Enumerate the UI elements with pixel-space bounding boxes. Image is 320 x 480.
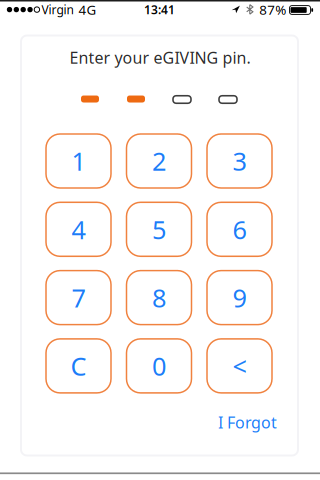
staticText: Enter your eGIVING pin. (69, 47, 250, 68)
button[interactable]: 1 (46, 134, 111, 188)
button[interactable]: Delete (207, 339, 272, 393)
staticText: Virgin (41, 2, 73, 17)
staticText: 87% (259, 1, 286, 18)
button[interactable]: 9 (207, 271, 272, 325)
staticText: 4 (71, 212, 85, 246)
button[interactable]: 3 (207, 134, 272, 188)
staticText: 6 (232, 212, 246, 246)
button[interactable]: 4 (46, 202, 111, 256)
button[interactable]: 5 (126, 202, 191, 256)
button[interactable]: 8 (126, 271, 191, 325)
staticText: 1 (71, 144, 85, 178)
staticText: 5 (152, 212, 166, 246)
button[interactable]: Clear (46, 339, 111, 393)
staticText: 13:41 (144, 2, 175, 17)
staticText: 7 (71, 281, 85, 314)
staticText: 0 (152, 349, 166, 383)
staticText: 2 (152, 144, 166, 178)
staticText: C (70, 349, 86, 383)
button[interactable]: 6 (207, 202, 272, 256)
staticText: I Forgot (218, 412, 277, 433)
button[interactable]: 0 (126, 339, 191, 393)
staticText: 4G (78, 1, 96, 18)
button[interactable]: 2 (126, 134, 191, 188)
staticText: 3 (232, 144, 246, 178)
staticText: 9 (232, 281, 246, 314)
button[interactable]: 7 (46, 271, 111, 325)
staticText: 8 (152, 281, 166, 314)
button[interactable]: I Forgot (218, 412, 277, 433)
staticText: < (232, 349, 246, 383)
